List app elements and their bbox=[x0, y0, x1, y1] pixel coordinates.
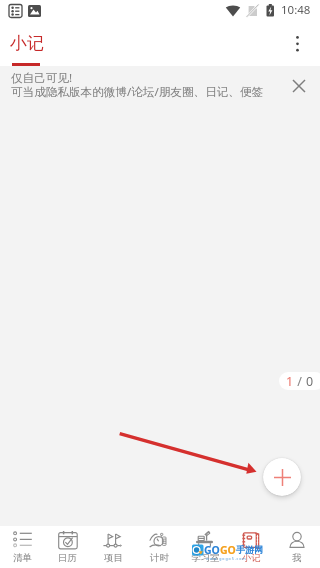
button[interactable]: 学习室 bbox=[182, 526, 228, 568]
staticText: 0 bbox=[306, 373, 314, 390]
staticText: 日历 bbox=[58, 552, 77, 564]
button[interactable]: 我 bbox=[274, 526, 320, 568]
staticText: / bbox=[294, 373, 306, 390]
staticText: 小记 bbox=[10, 33, 44, 54]
staticText: 计时 bbox=[150, 552, 169, 564]
button[interactable]: More options bbox=[278, 24, 318, 64]
staticText: 小记 bbox=[242, 552, 261, 564]
button[interactable]: 1 bbox=[279, 372, 320, 390]
button[interactable]: 计时 bbox=[136, 526, 182, 568]
staticText: 清单 bbox=[13, 552, 32, 564]
staticText: 学习室 bbox=[191, 552, 220, 564]
staticText: 项目 bbox=[104, 552, 123, 564]
staticText: GO bbox=[220, 543, 236, 557]
button[interactable]: Close bbox=[283, 70, 315, 102]
staticText: 我 bbox=[292, 552, 302, 564]
button[interactable]: 小记 bbox=[228, 526, 274, 568]
staticText: 仅自己可见! 可当成隐私版本的微博/论坛/朋友圈、日记、便签 bbox=[11, 70, 320, 99]
staticText: 手游网 bbox=[236, 544, 263, 555]
button[interactable]: 项目 bbox=[90, 526, 136, 568]
button[interactable]: 日历 bbox=[45, 526, 90, 568]
staticText: GO bbox=[204, 543, 220, 557]
button[interactable]: 清单 bbox=[0, 526, 45, 568]
button[interactable]: Add note bbox=[263, 458, 301, 496]
staticText: 10:48 bbox=[281, 2, 311, 18]
staticText: 1 bbox=[286, 373, 294, 390]
staticText: w w w . g o g o 5 . c o m bbox=[206, 556, 246, 561]
